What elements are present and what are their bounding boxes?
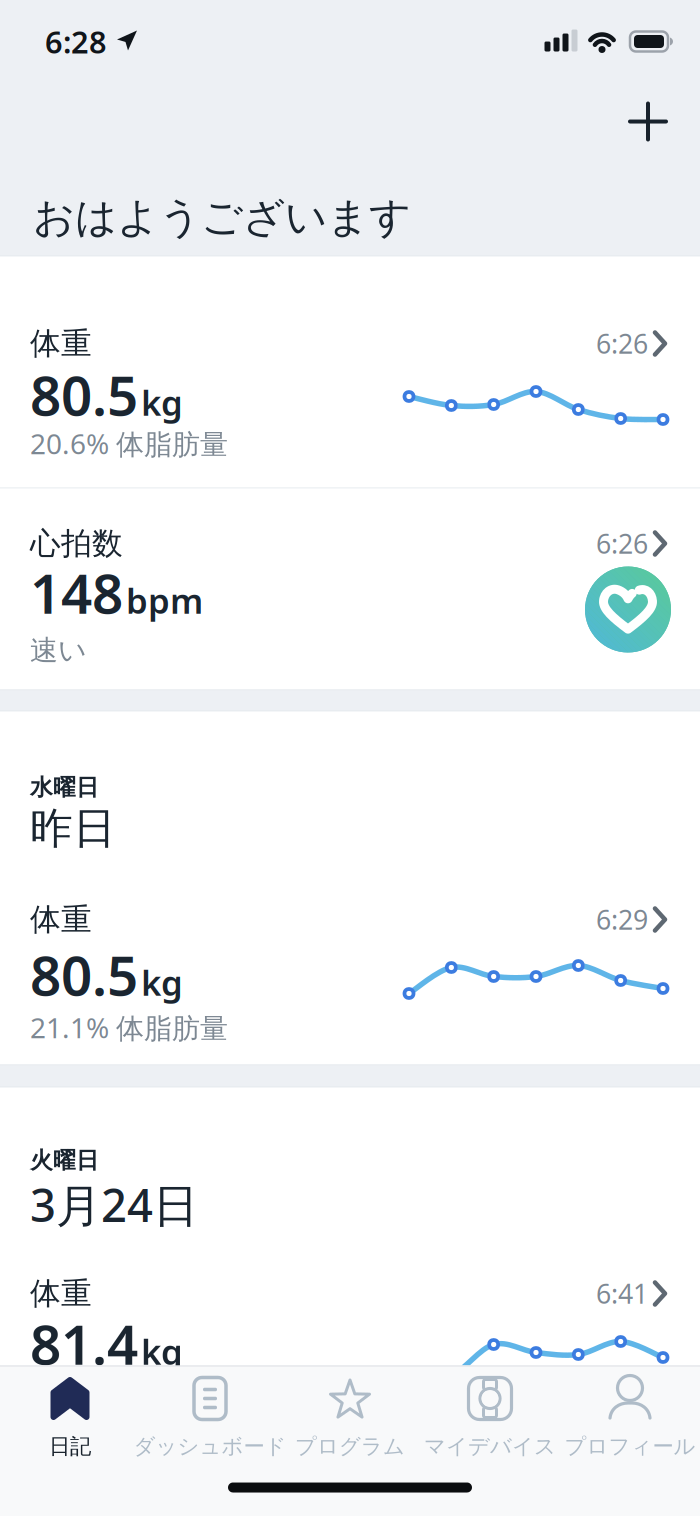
- button[interactable]: 追加: [630, 103, 666, 139]
- button[interactable]: 日記: [0, 1365, 140, 1483]
- staticText: 3月24日: [30, 1174, 198, 1235]
- button[interactable]: 心拍数: [0, 488, 700, 689]
- button[interactable]: プロフィール: [560, 1365, 700, 1483]
- staticText: 80.5: [30, 938, 138, 1011]
- staticText: 昨日: [30, 802, 116, 855]
- staticText: kg: [141, 379, 183, 425]
- staticText: 体重: [30, 901, 92, 938]
- staticText: 6:29: [596, 902, 648, 937]
- staticText: おはようございます: [33, 192, 411, 243]
- staticText: bpm: [126, 577, 203, 623]
- button[interactable]: ダッシュボード: [140, 1365, 280, 1483]
- button[interactable]: 体重: [0, 256, 700, 487]
- staticText: 81.4: [30, 1307, 138, 1380]
- staticText: 80.5: [30, 358, 138, 431]
- staticText: 体重: [30, 325, 92, 362]
- staticText: 6:28: [45, 21, 107, 62]
- staticText: 6:26: [596, 526, 648, 561]
- staticText: プロフィール: [564, 1433, 695, 1460]
- button[interactable]: プログラム: [280, 1365, 420, 1483]
- button[interactable]: マイデバイス: [420, 1365, 560, 1483]
- staticText: ダッシュボード: [133, 1433, 286, 1460]
- staticText: 水曜日: [30, 774, 99, 801]
- staticText: 火曜日: [30, 1147, 99, 1174]
- staticText: プログラム: [295, 1433, 405, 1460]
- staticText: 21.1% 体脂肪量: [30, 1009, 228, 1046]
- staticText: 6:26: [596, 326, 648, 361]
- staticText: 148: [30, 556, 123, 629]
- staticText: 日記: [49, 1433, 91, 1460]
- staticText: 体重: [30, 1275, 92, 1312]
- staticText: kg: [141, 1328, 183, 1374]
- staticText: 20.6% 体脂肪量: [30, 425, 228, 462]
- staticText: 6:41: [596, 1276, 648, 1311]
- staticText: 心拍数: [30, 525, 123, 562]
- staticText: kg: [141, 959, 183, 1005]
- button[interactable]: 体重: [0, 711, 700, 1064]
- staticText: マイデバイス: [424, 1433, 556, 1460]
- staticText: 速い: [30, 633, 87, 668]
- button[interactable]: 体重: [0, 1087, 700, 1365]
